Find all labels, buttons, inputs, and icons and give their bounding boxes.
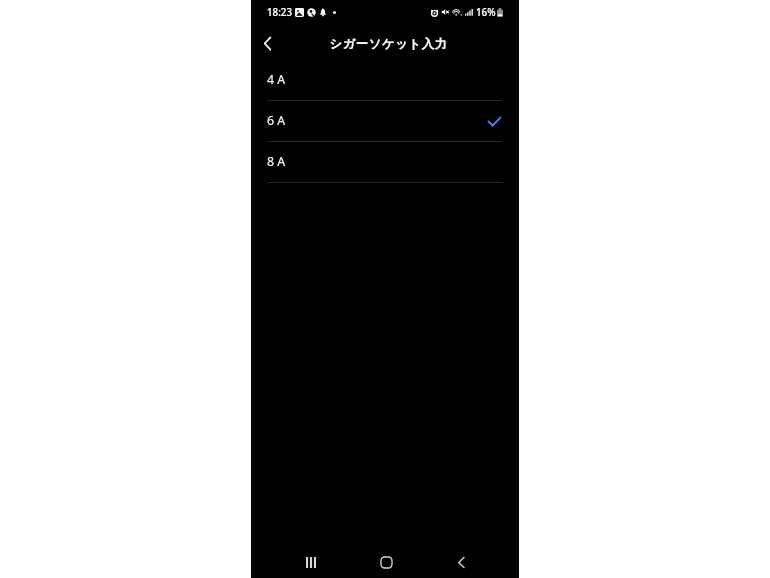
staticText: 18:23 — [267, 6, 293, 19]
button[interactable]: Back — [252, 28, 282, 58]
staticText: 8 A — [267, 153, 286, 170]
button[interactable]: 6 A — [251, 101, 519, 142]
staticText: 6 A — [267, 112, 286, 129]
button[interactable]: Back — [443, 547, 479, 578]
button[interactable]: 4 A — [251, 60, 519, 101]
button[interactable]: 8 A — [251, 142, 519, 183]
staticText: 16% — [476, 6, 496, 19]
staticText: 4 A — [267, 71, 286, 88]
staticText: シガーソケット入力 — [329, 36, 448, 51]
button[interactable]: Home — [368, 547, 404, 578]
button[interactable]: Recents — [293, 547, 329, 578]
